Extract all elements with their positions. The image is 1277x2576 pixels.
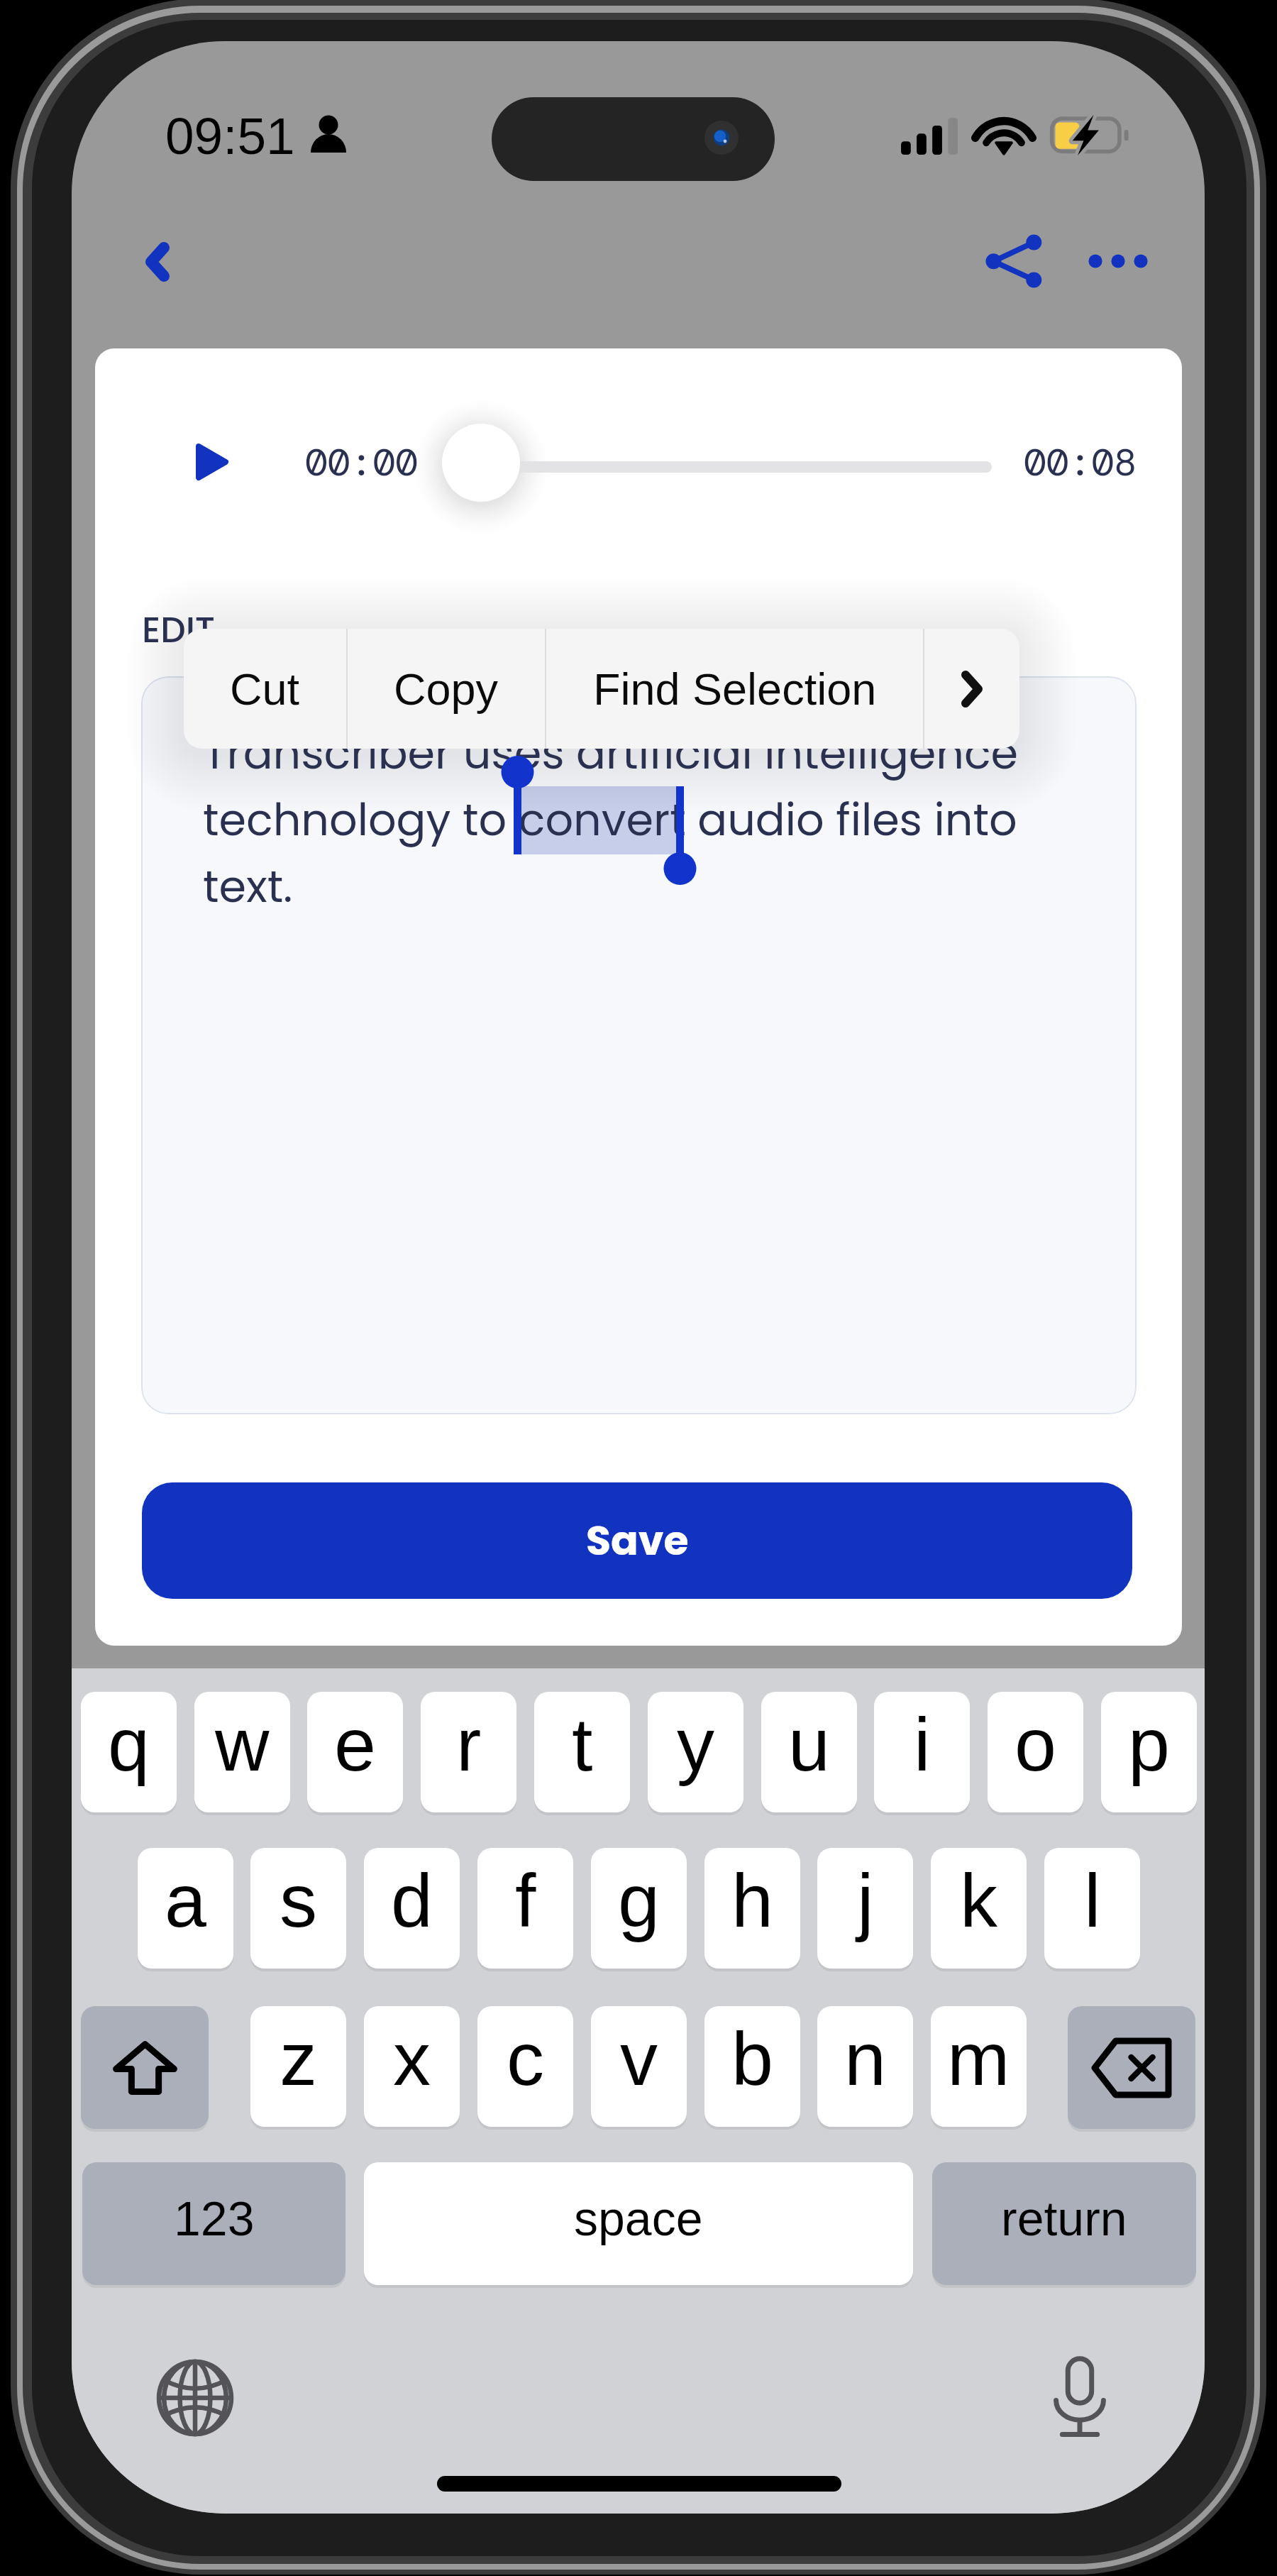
staticText: n xyxy=(844,2017,886,2101)
button[interactable] xyxy=(81,2006,209,2129)
staticText: 09:51 xyxy=(165,107,295,165)
button[interactable]: r xyxy=(421,1692,516,1812)
button[interactable]: q xyxy=(81,1692,177,1812)
button[interactable] xyxy=(1068,2006,1195,2129)
staticText: c xyxy=(507,2017,544,2101)
button[interactable]: Dictate xyxy=(1037,2355,1122,2440)
staticText: o xyxy=(1015,1702,1056,1786)
button[interactable]: Copy xyxy=(348,629,545,749)
staticText: 123 xyxy=(174,2191,255,2245)
button[interactable]: Seek position xyxy=(442,424,520,502)
staticText: x xyxy=(393,2017,431,2101)
button[interactable]: b xyxy=(704,2006,800,2127)
staticText: Transcriber uses artificial intelligence… xyxy=(203,722,1076,918)
staticText: k xyxy=(960,1859,997,1942)
staticText: z xyxy=(280,2017,317,2101)
staticText: b xyxy=(731,2017,773,2101)
staticText: m xyxy=(947,2017,1010,2101)
staticText: Copy xyxy=(394,664,499,714)
staticText: l xyxy=(1084,1859,1101,1942)
staticText: Cut xyxy=(230,664,300,714)
button[interactable]: Play xyxy=(173,424,250,500)
button[interactable]: Change keyboard xyxy=(153,2355,238,2440)
staticText: a xyxy=(165,1859,206,1942)
staticText: i xyxy=(914,1702,931,1786)
button[interactable]: Find Selection xyxy=(546,629,923,749)
button[interactable]: t xyxy=(534,1692,630,1812)
staticText: d xyxy=(391,1859,433,1942)
button[interactable]: p xyxy=(1101,1692,1197,1812)
button[interactable]: y xyxy=(648,1692,743,1812)
staticText: space xyxy=(574,2191,703,2245)
button[interactable]: More actions xyxy=(924,629,1019,749)
staticText: r xyxy=(456,1702,482,1786)
button[interactable]: d xyxy=(364,1848,460,1969)
button[interactable]: a xyxy=(138,1848,233,1969)
staticText: Save xyxy=(586,1512,689,1569)
staticText: s xyxy=(280,1859,317,1942)
button[interactable]: o xyxy=(988,1692,1083,1812)
staticText: EDIT xyxy=(142,605,216,655)
button[interactable]: i xyxy=(874,1692,970,1812)
button[interactable]: Back xyxy=(111,219,204,305)
button[interactable]: Share xyxy=(951,219,1078,305)
button[interactable]: return xyxy=(932,2162,1196,2285)
button[interactable]: Save xyxy=(142,1482,1132,1599)
button[interactable]: k xyxy=(931,1848,1027,1969)
staticText: v xyxy=(620,2017,658,2101)
button[interactable]: n xyxy=(817,2006,913,2127)
button[interactable]: c xyxy=(477,2006,573,2127)
staticText: Find Selection xyxy=(593,664,877,714)
button[interactable]: 123 xyxy=(82,2162,345,2285)
button[interactable]: f xyxy=(477,1848,573,1969)
staticText: g xyxy=(618,1859,660,1942)
button[interactable]: z xyxy=(250,2006,346,2127)
button[interactable]: Transcriber uses artificial intelligence… xyxy=(141,676,1137,1414)
button[interactable]: h xyxy=(704,1848,800,1969)
staticText: t xyxy=(572,1702,593,1786)
staticText: f xyxy=(515,1859,536,1942)
button[interactable]: l xyxy=(1044,1848,1140,1969)
button[interactable]: s xyxy=(250,1848,346,1969)
staticText: e xyxy=(334,1702,376,1786)
button[interactable]: space xyxy=(364,2162,913,2285)
staticText: 00:08 xyxy=(1024,438,1137,487)
button[interactable]: j xyxy=(817,1848,913,1969)
button[interactable]: e xyxy=(307,1692,403,1812)
staticText: h xyxy=(731,1859,773,1942)
button[interactable]: x xyxy=(364,2006,460,2127)
staticText: q xyxy=(108,1702,150,1786)
staticText: u xyxy=(788,1702,830,1786)
staticText: j xyxy=(857,1859,874,1942)
button[interactable]: More options xyxy=(1065,219,1178,305)
staticText: y xyxy=(677,1702,714,1786)
button[interactable]: g xyxy=(591,1848,687,1969)
button[interactable]: v xyxy=(591,2006,687,2127)
staticText: w xyxy=(215,1702,270,1786)
button[interactable]: u xyxy=(761,1692,857,1812)
button[interactable]: m xyxy=(931,2006,1027,2127)
staticText: 00:00 xyxy=(305,438,418,487)
button[interactable]: w xyxy=(194,1692,290,1812)
staticText: p xyxy=(1128,1702,1170,1786)
button[interactable]: Cut xyxy=(184,629,346,749)
staticText: return xyxy=(1001,2191,1127,2245)
